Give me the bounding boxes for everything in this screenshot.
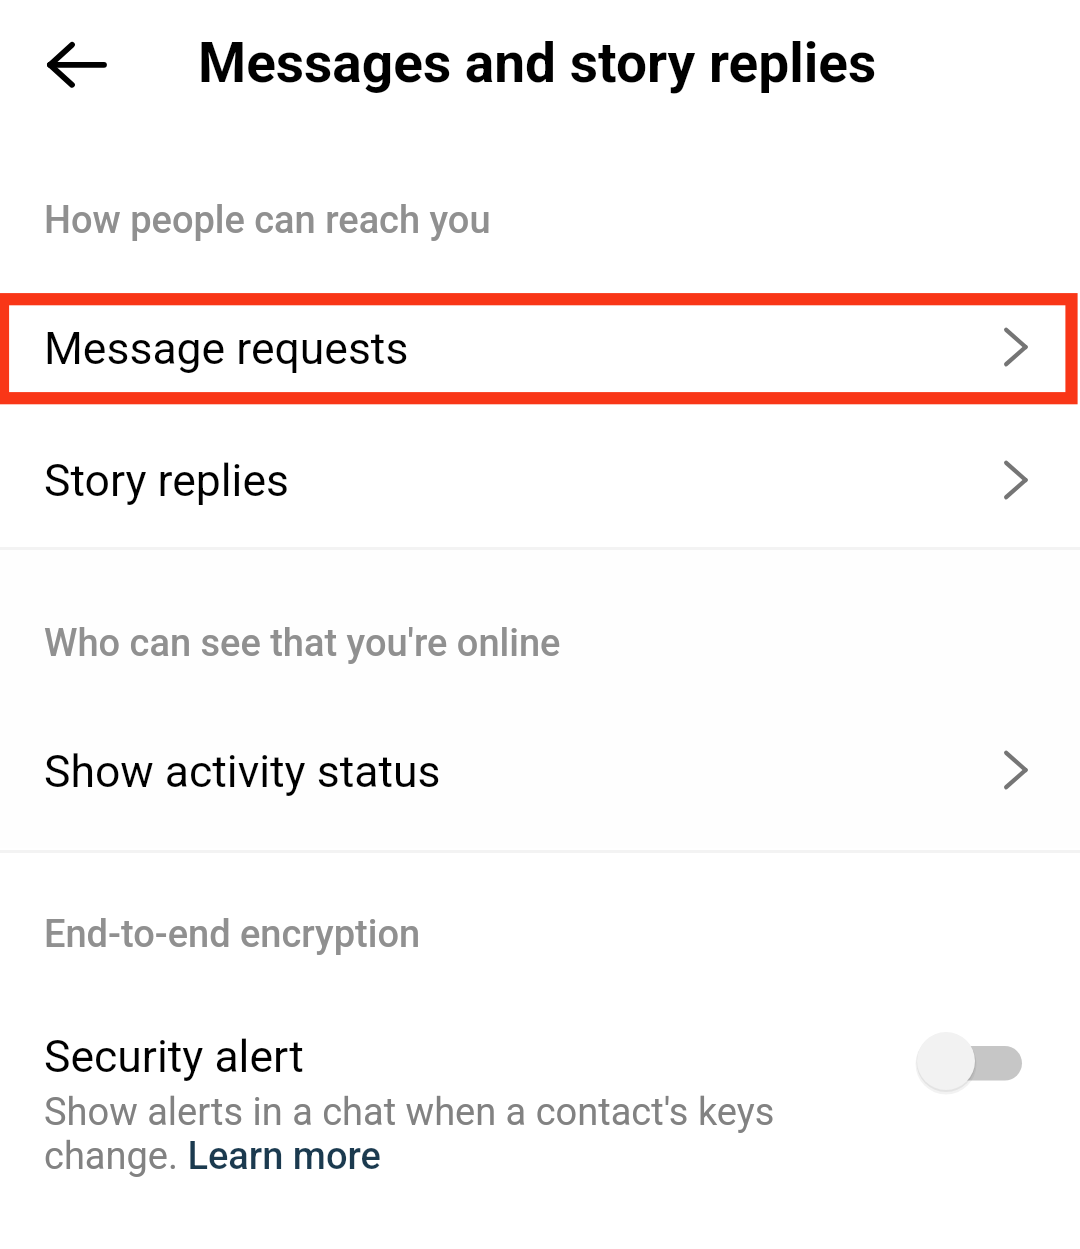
- staticText: Security alert: [44, 1031, 304, 1083]
- button[interactable]: [0, 293, 1080, 405]
- staticText: Messages and story replies: [198, 31, 877, 95]
- staticText: End-to-end encryption: [44, 912, 421, 957]
- staticText: Show activity status: [44, 746, 441, 798]
- staticText: Who can see that you're online: [44, 621, 561, 666]
- staticText: Story replies: [44, 455, 289, 507]
- button[interactable]: [0, 715, 1080, 826]
- staticText: Show alerts in a chat when a contact's k…: [44, 1090, 834, 1178]
- staticText: Message requests: [44, 323, 409, 375]
- button[interactable]: [0, 424, 1080, 535]
- button[interactable]: [0, 1005, 1080, 1195]
- button[interactable]: Back: [20, 25, 134, 104]
- staticText: How people can reach you: [44, 198, 491, 243]
- button[interactable]: Security alert toggle: [906, 1026, 1034, 1096]
